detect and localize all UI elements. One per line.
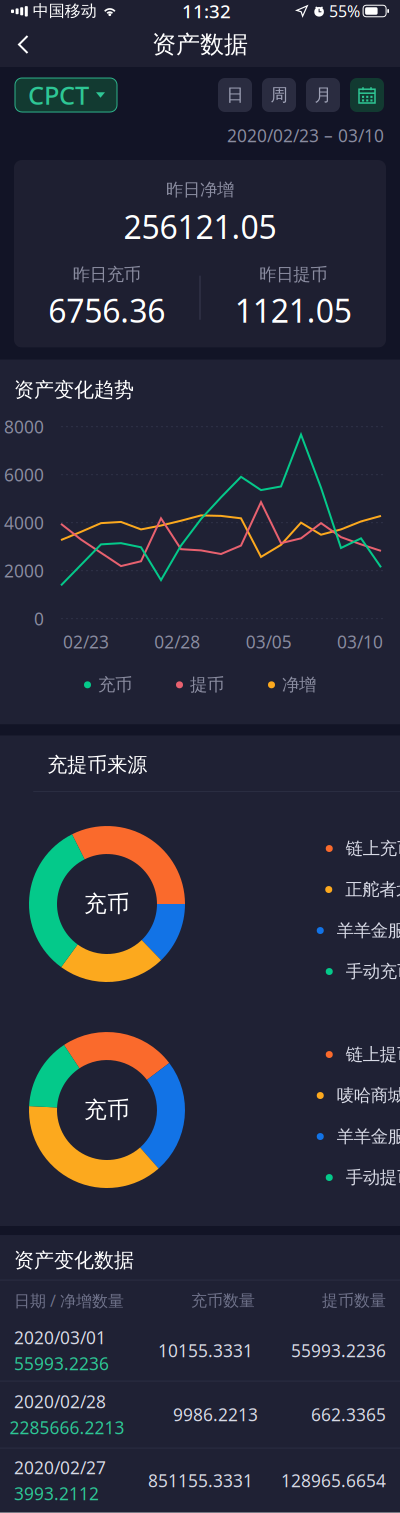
staticText: 02/23: [63, 630, 109, 653]
staticText: 日: [226, 84, 243, 106]
staticText: 128965.6654: [281, 1469, 386, 1492]
staticText: 链上充币: [346, 838, 400, 859]
staticText: 8000: [4, 415, 44, 438]
staticText: 1121.05: [235, 289, 352, 332]
staticText: 2020/02/28: [14, 1390, 106, 1413]
staticText: 2020/02/27: [14, 1456, 106, 1479]
staticText: 2285666.2213: [9, 1416, 124, 1439]
staticText: 11:32: [182, 0, 231, 23]
staticText: 提币数量: [322, 1291, 386, 1310]
staticText: 充币: [98, 674, 132, 695]
button[interactable]: Back: [0, 22, 45, 67]
button[interactable]: 日: [218, 78, 252, 112]
staticText: 资产变化趋势: [14, 378, 134, 402]
staticText: 昨日净增: [166, 179, 234, 200]
staticText: 月: [314, 84, 331, 106]
staticText: 662.3365: [311, 1403, 386, 1426]
staticText: 日期 / 净增数量: [14, 1290, 124, 1311]
staticText: 充币: [84, 890, 130, 918]
staticText: 55%: [329, 0, 360, 22]
staticText: 正舵者划入: [345, 879, 400, 900]
staticText: 充提币来源: [47, 752, 147, 777]
staticText: 周: [270, 84, 287, 106]
staticText: 充币数量: [191, 1291, 255, 1310]
staticText: 6756.36: [48, 289, 165, 332]
button[interactable]: 月: [306, 78, 340, 112]
staticText: 55993.2236: [291, 1339, 386, 1362]
staticText: 03/05: [246, 630, 292, 653]
staticText: 4000: [4, 511, 44, 534]
staticText: 手动提币: [346, 1167, 400, 1188]
staticText: 03/10: [337, 630, 383, 653]
staticText: 羊羊金服划出: [337, 1126, 400, 1147]
staticText: 256121.05: [123, 205, 276, 248]
staticText: 净增: [282, 674, 316, 695]
staticText: 2000: [4, 559, 44, 582]
staticText: 3993.2112: [14, 1482, 99, 1505]
staticText: 2020/03/01: [14, 1326, 106, 1349]
staticText: 昨日充币: [73, 264, 141, 285]
staticText: 羊羊金服划入: [337, 920, 400, 941]
staticText: 55993.2236: [14, 1352, 109, 1375]
staticText: 资产变化数据: [14, 1248, 134, 1273]
staticText: 手动充币: [346, 961, 400, 982]
button[interactable]: 周: [262, 78, 296, 112]
staticText: 昨日提币: [259, 264, 327, 285]
button[interactable]: CPCT: [15, 78, 117, 112]
staticText: 唛哈商城划出: [337, 1085, 400, 1106]
staticText: 02/28: [154, 630, 200, 653]
staticText: 资产数据: [152, 30, 248, 59]
staticText: 9986.2213: [173, 1403, 258, 1426]
staticText: 10155.3331: [158, 1339, 253, 1362]
staticText: 链上提币: [346, 1044, 400, 1065]
staticText: 0: [34, 607, 44, 630]
staticText: CPCT: [28, 78, 89, 112]
staticText: 充币: [84, 1096, 130, 1124]
button[interactable]: Pick date range: [350, 78, 384, 112]
staticText: 提币: [190, 674, 224, 695]
staticText: 中国移动: [33, 1, 97, 21]
staticText: 2020/02/23 – 03/10: [227, 124, 384, 147]
staticText: 851155.3331: [148, 1469, 253, 1492]
staticText: 6000: [4, 463, 44, 486]
